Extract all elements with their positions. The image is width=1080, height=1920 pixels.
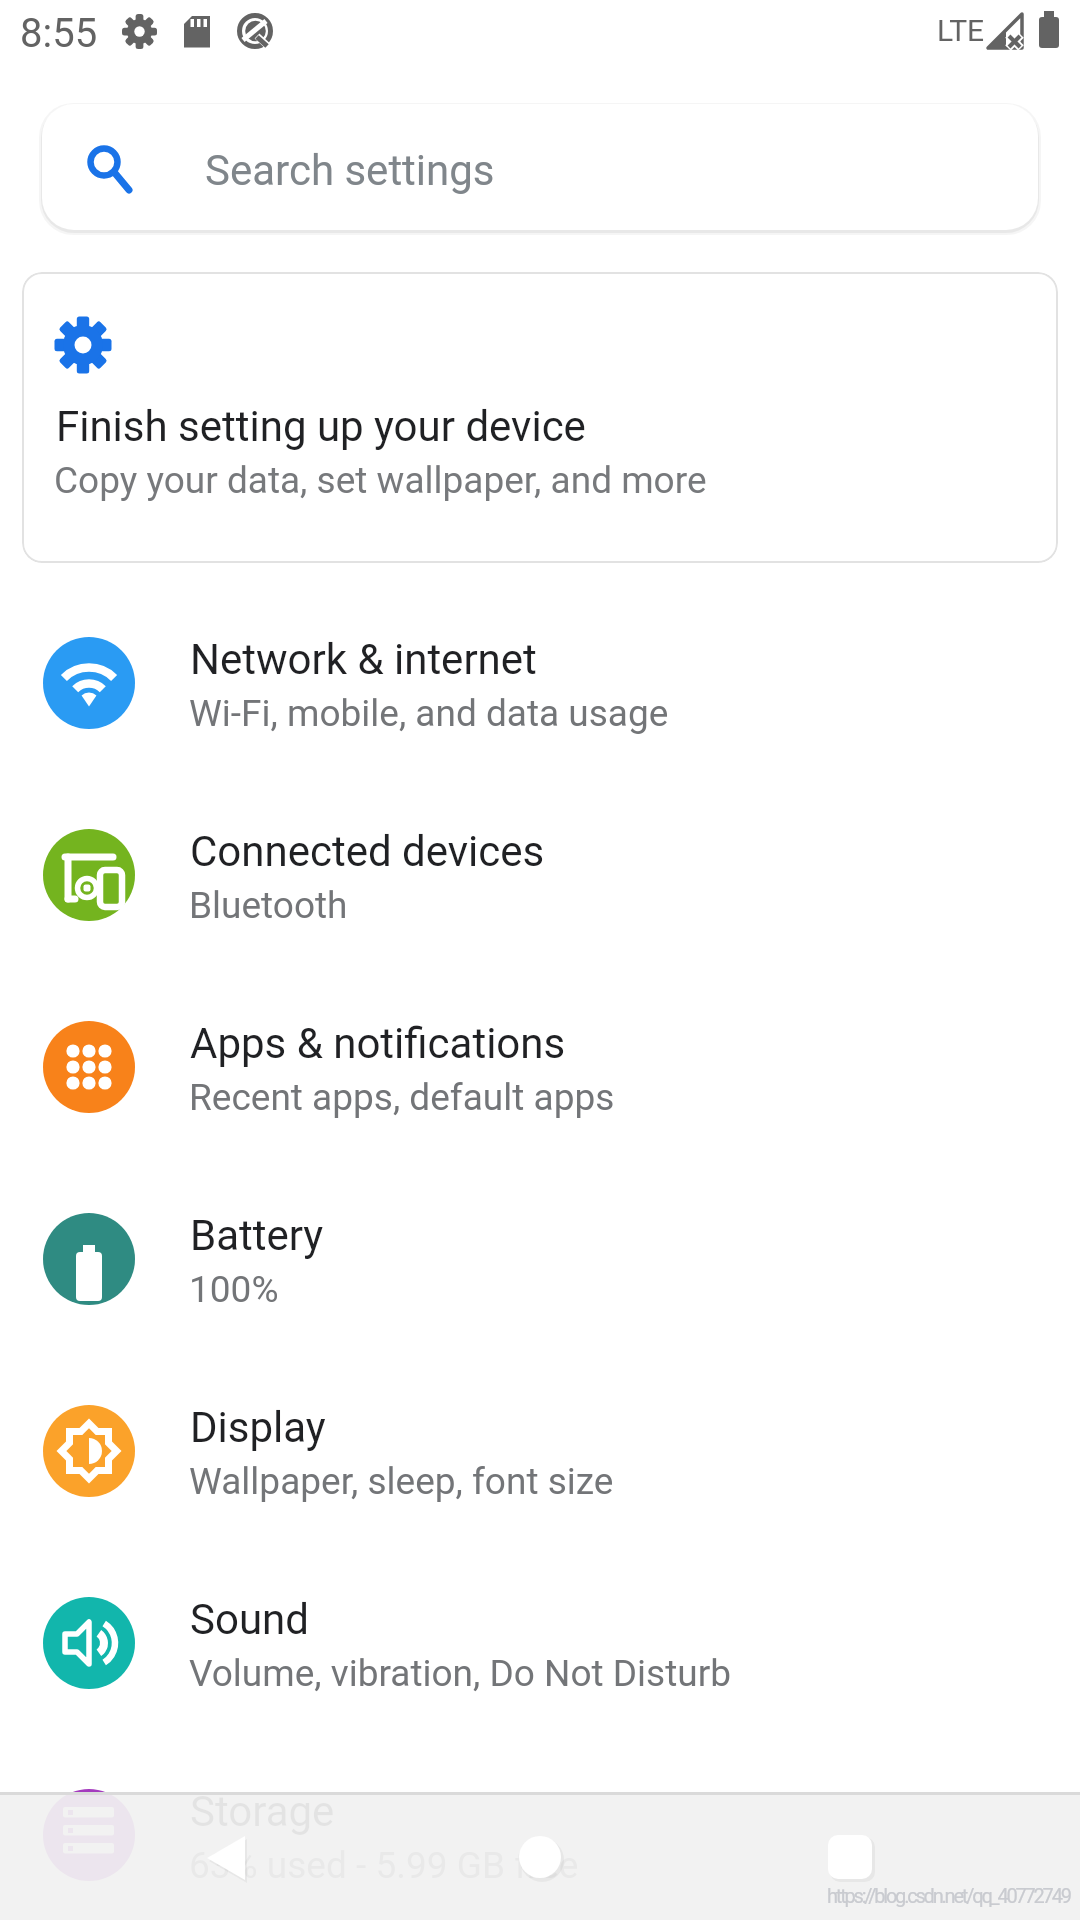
staticText: 8:55 <box>20 10 98 57</box>
staticText: Sound <box>190 1595 309 1644</box>
staticText: Wi-Fi, mobile, and data usage <box>189 692 669 735</box>
staticText: 100% <box>189 1268 279 1311</box>
staticText: Connected devices <box>190 827 545 876</box>
button[interactable]: Display <box>0 1355 1080 1547</box>
staticText: Display <box>190 1403 326 1452</box>
button[interactable] <box>800 1814 900 1914</box>
staticText: Finish setting up your device <box>56 402 586 451</box>
staticText: Bluetooth <box>189 884 348 927</box>
staticText: Wallpaper, sleep, font size <box>189 1460 614 1503</box>
staticText: 63% used - 5.99 GB free <box>189 1844 579 1887</box>
button[interactable]: Finish setting up your device <box>22 272 1058 563</box>
staticText: Network & internet <box>190 635 537 684</box>
button[interactable]: Search settings <box>42 104 1038 230</box>
staticText: https://blog.csdn.net/qq_40772749 <box>827 1884 1070 1907</box>
staticText: Volume, vibration, Do Not Disturb <box>189 1652 732 1695</box>
button[interactable]: Network & internet <box>0 587 1080 779</box>
staticText: Apps & notifications <box>190 1019 566 1068</box>
button[interactable] <box>490 1814 590 1914</box>
button[interactable]: Apps & notifications <box>0 971 1080 1163</box>
button[interactable]: Connected devices <box>0 779 1080 971</box>
button[interactable]: Storage <box>0 1739 1080 1920</box>
button[interactable] <box>180 1814 280 1914</box>
button[interactable]: Sound <box>0 1547 1080 1739</box>
staticText: Storage <box>190 1787 335 1836</box>
button[interactable]: Battery <box>0 1163 1080 1355</box>
staticText: Recent apps, default apps <box>189 1076 615 1119</box>
staticText: LTE <box>937 13 985 48</box>
staticText: Copy your data, set wallpaper, and more <box>54 459 707 502</box>
staticText: Battery <box>190 1211 324 1260</box>
staticText: Search settings <box>205 146 495 195</box>
